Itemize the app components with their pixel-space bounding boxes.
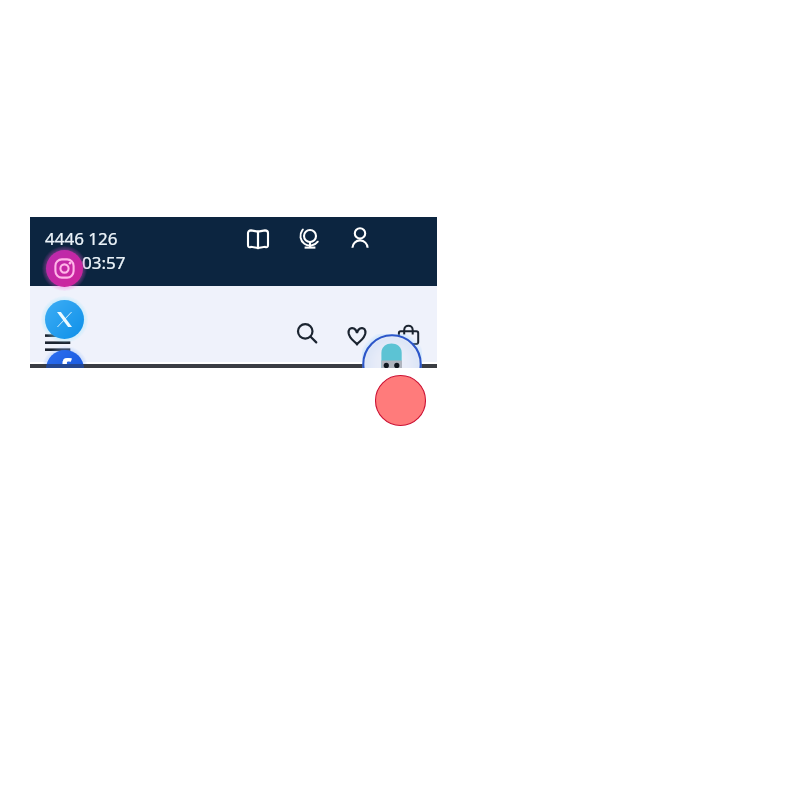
button[interactable]: Account [346, 223, 374, 251]
button[interactable]: Chat [375, 375, 426, 426]
button[interactable]: Profile avatar [362, 334, 422, 368]
staticText: 4446 126 [45, 227, 118, 250]
button[interactable]: X [41, 296, 88, 343]
button[interactable]: Cart [394, 321, 422, 349]
button[interactable]: Wishlist [343, 321, 371, 349]
staticText: 03:57 [82, 251, 126, 274]
button[interactable]: Menu [41, 330, 73, 354]
button[interactable]: Language [296, 225, 324, 253]
button[interactable]: Search [293, 320, 321, 348]
staticText: f [60, 350, 71, 368]
button[interactable]: Facebook [42, 346, 88, 368]
button[interactable]: Instagram [42, 246, 87, 291]
button[interactable]: Catalogue [244, 225, 272, 253]
